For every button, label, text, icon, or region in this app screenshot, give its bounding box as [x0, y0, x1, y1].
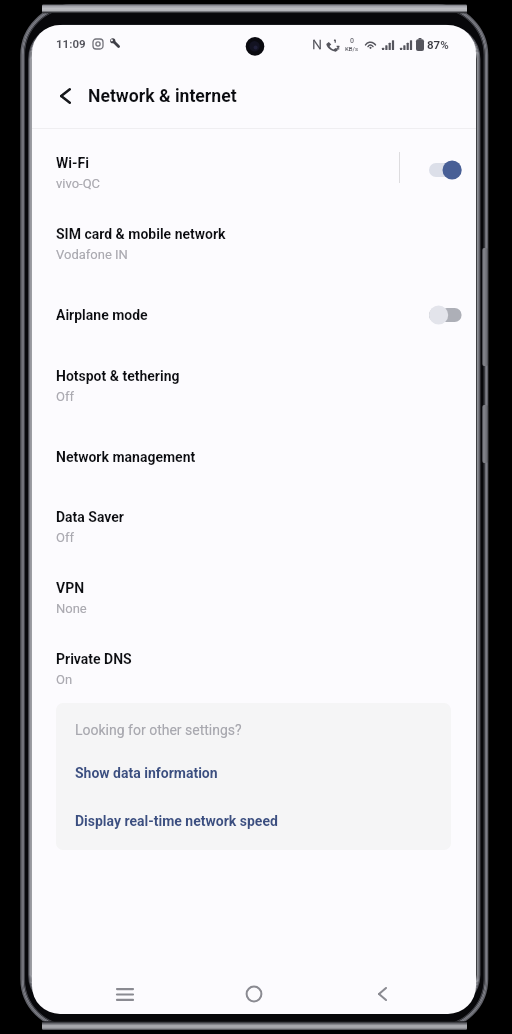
staticText: VPN [56, 580, 85, 596]
button[interactable]: Back [43, 74, 87, 118]
staticText: Looking for other settings? [75, 722, 242, 738]
button[interactable]: Hotspot & tethering [32, 350, 476, 421]
staticText: KB/s [345, 45, 359, 52]
button[interactable]: Wi-Fi [32, 137, 476, 208]
staticText: Display real-time network speed [75, 813, 278, 829]
button[interactable]: VPN [32, 562, 476, 633]
staticText: 87% [427, 38, 449, 51]
staticText: Network management [56, 449, 196, 465]
staticText: Vodafone IN [56, 247, 128, 262]
staticText: SIM card & mobile network [56, 226, 226, 242]
staticText: Hotspot & tethering [56, 368, 180, 384]
staticText: 11:09 [56, 37, 86, 50]
staticText: Off [56, 530, 74, 545]
staticText: On [56, 672, 73, 687]
button[interactable]: Back [361, 973, 403, 1014]
staticText: 0 [350, 37, 354, 45]
staticText: Airplane mode [56, 307, 148, 323]
staticText: Show data information [75, 765, 218, 781]
button[interactable] [429, 160, 462, 180]
button[interactable]: Recent apps [104, 973, 146, 1014]
button[interactable]: Airplane mode [32, 279, 476, 350]
button[interactable] [429, 305, 462, 325]
staticText: Wi-Fi [56, 155, 89, 171]
button[interactable]: SIM card & mobile network [32, 208, 476, 279]
staticText: Off [56, 389, 74, 404]
button[interactable]: Show data information [75, 765, 218, 781]
staticText: Private DNS [56, 651, 132, 667]
button[interactable]: Data Saver [32, 491, 476, 562]
button[interactable]: Display real-time network speed [75, 813, 278, 829]
staticText: vivo-QC [56, 176, 101, 191]
button[interactable]: Home [233, 973, 275, 1014]
button[interactable]: Network management [32, 421, 476, 492]
staticText: Data Saver [56, 509, 124, 525]
staticText: Network & internet [88, 86, 237, 107]
button[interactable]: Private DNS [32, 633, 476, 704]
staticText: None [56, 601, 87, 616]
